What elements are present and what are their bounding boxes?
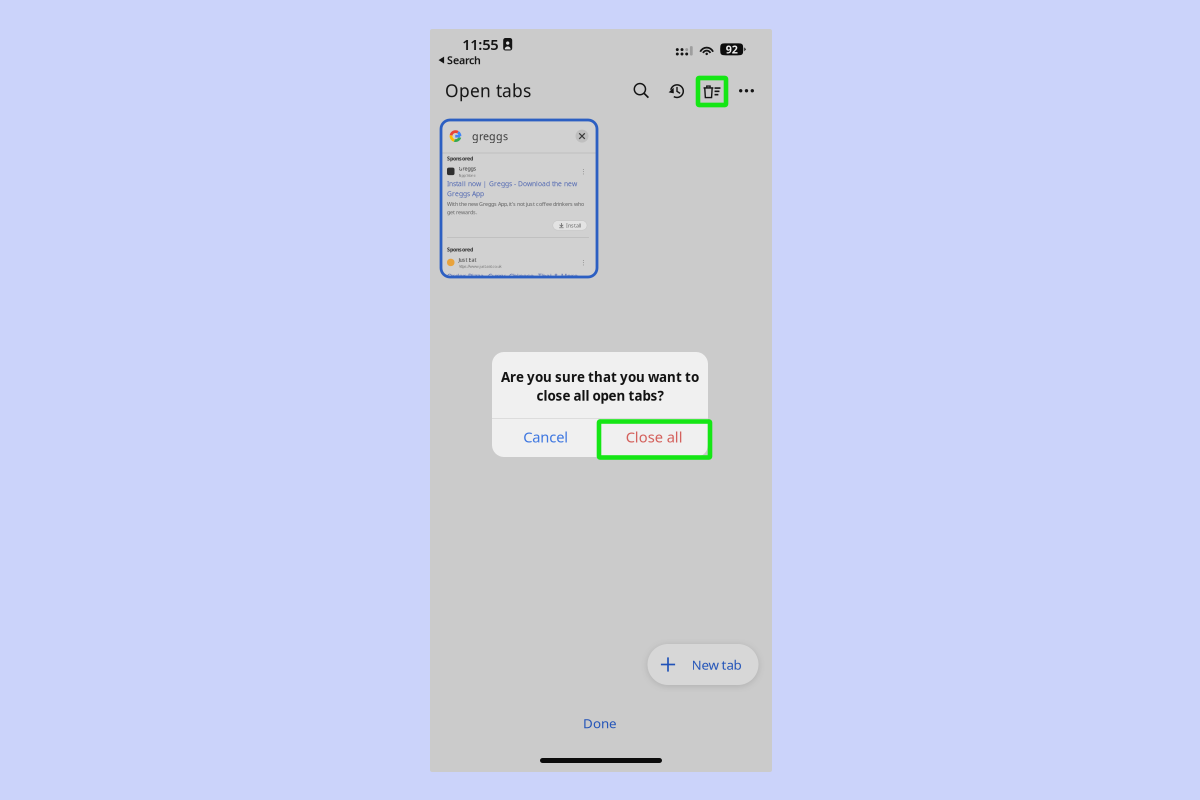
staticText: Install <box>566 222 581 229</box>
staticText: Search <box>447 53 481 67</box>
staticText: ⋮ <box>580 168 587 175</box>
staticText: Just Eat <box>458 256 476 263</box>
staticText: 92 <box>726 42 738 56</box>
staticText: Order Pizza, Curry, Chinese, Thai & More… <box>447 272 587 281</box>
staticText: greggs <box>472 129 508 143</box>
button[interactable]: Done <box>560 710 640 736</box>
staticText: Install now | Greggs - Download the new <box>447 179 577 188</box>
staticText: get rewards. <box>447 209 477 216</box>
staticText: New tab <box>691 656 741 673</box>
button[interactable]: Cancel <box>492 419 600 455</box>
button[interactable]: greggs tab <box>441 120 597 277</box>
button[interactable]: Close all tabs <box>696 75 728 106</box>
button[interactable]: More options <box>731 75 762 106</box>
staticText: ⋮ <box>580 259 587 266</box>
staticText: Sponsored <box>447 155 473 162</box>
staticText: App Store <box>458 172 475 178</box>
staticText: Are you sure that you want to <box>501 368 699 386</box>
staticText: Open tabs <box>445 79 531 102</box>
staticText: Cancel <box>523 427 568 447</box>
staticText: Done <box>583 714 617 732</box>
staticText: close all open tabs? <box>536 387 663 404</box>
staticText: Greggs <box>458 165 476 172</box>
button[interactable]: Recent tabs <box>661 75 692 106</box>
button[interactable]: New tab <box>647 644 758 685</box>
staticText: Greggs App <box>447 189 484 198</box>
staticText: Close all <box>626 427 683 447</box>
staticText: https://www.just-eat.co.uk <box>458 263 501 269</box>
button[interactable]: Search tabs <box>626 75 657 106</box>
staticText: With the new Greggs App, it's not just c… <box>447 200 584 208</box>
button[interactable]: Close all tabs <box>600 419 708 455</box>
staticText: 11:55 <box>462 34 498 54</box>
staticText: Sponsored <box>447 246 473 253</box>
